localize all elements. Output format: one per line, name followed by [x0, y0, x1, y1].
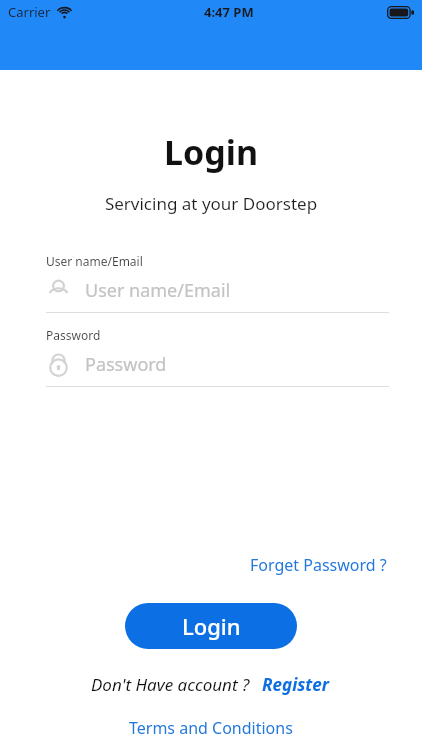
staticText: Servicing at your Doorstep	[0, 192, 422, 215]
button[interactable]: Register	[260, 671, 331, 698]
staticText: User name/Email	[85, 278, 231, 303]
staticText: User name/Email	[46, 253, 143, 269]
staticText: Login	[0, 129, 422, 175]
button[interactable]: Terms and Conditions	[126, 714, 296, 742]
staticText: Password	[85, 352, 167, 377]
button[interactable]: Forget Password ?	[248, 551, 389, 579]
staticText: Password	[46, 327, 101, 343]
button[interactable]: Password	[0, 327, 422, 387]
staticText: Login	[182, 611, 241, 641]
button[interactable]: Login	[125, 603, 297, 649]
staticText: 4:47 PM	[204, 3, 254, 21]
staticText: Carrier	[8, 3, 51, 21]
button[interactable]: User name/Email	[0, 253, 422, 313]
staticText: Don't Have account ?	[91, 673, 250, 696]
